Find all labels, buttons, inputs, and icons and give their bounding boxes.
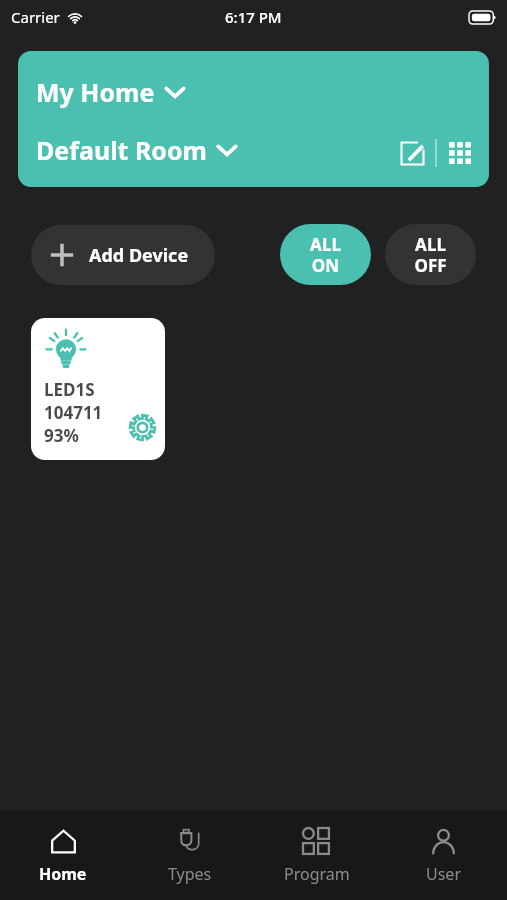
staticText: User <box>426 863 461 885</box>
button[interactable]: Edit <box>395 136 429 170</box>
button[interactable]: ALL ON <box>280 224 371 285</box>
staticText: ALL ON <box>310 233 341 277</box>
staticText: LED1S <box>44 378 95 401</box>
staticText: Default Room <box>36 133 207 167</box>
button[interactable]: Device settings <box>127 412 157 442</box>
button[interactable]: Default Room <box>32 131 242 169</box>
staticText: ALL OFF <box>414 233 447 277</box>
staticText: My Home <box>36 75 155 109</box>
button[interactable]: Program <box>253 810 380 900</box>
staticText: 104711 <box>44 401 103 424</box>
button[interactable]: LED1S <box>31 318 165 460</box>
staticText: Carrier <box>11 7 60 27</box>
button[interactable]: Add Device <box>31 225 215 285</box>
staticText: 6:17 PM <box>225 7 282 27</box>
button[interactable]: Grid view <box>443 136 477 170</box>
staticText: Home <box>39 863 87 885</box>
button[interactable]: User <box>380 810 507 900</box>
button[interactable]: My Home <box>32 73 190 111</box>
button[interactable]: Types <box>126 810 253 900</box>
staticText: Types <box>168 863 212 885</box>
button[interactable]: ALL OFF <box>385 224 476 285</box>
button[interactable]: Home <box>0 810 126 900</box>
staticText: Program <box>284 863 350 885</box>
staticText: 93% <box>44 424 79 447</box>
staticText: Add Device <box>89 243 189 268</box>
